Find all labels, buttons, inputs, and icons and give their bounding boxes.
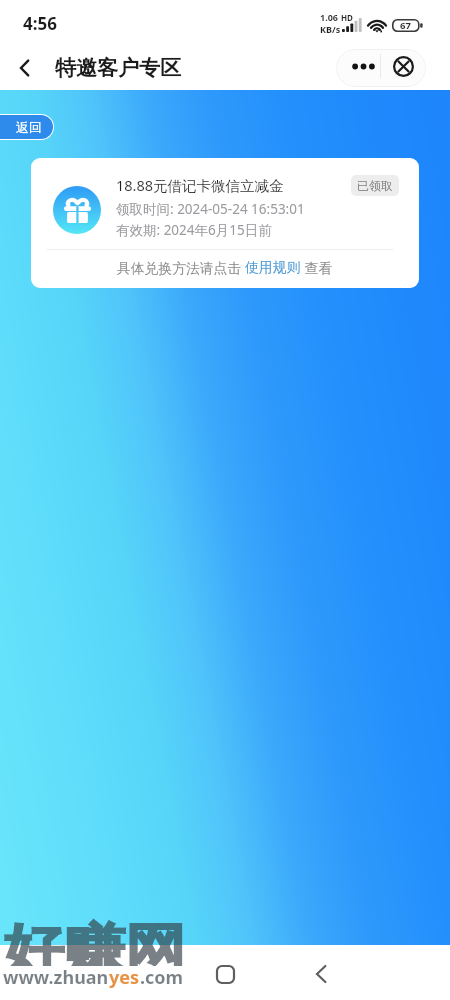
staticText: 具体兑换方法请点击 xyxy=(117,258,245,277)
staticText: 67 xyxy=(400,19,411,32)
button[interactable]: 18.88元借记卡微信立减金 xyxy=(31,158,419,288)
staticText: 特邀客户专区 xyxy=(55,55,181,81)
staticText: 使用规则 xyxy=(245,259,301,276)
staticText: HD xyxy=(341,12,353,23)
staticText: 4:56 xyxy=(23,12,57,35)
button[interactable]: Back xyxy=(299,952,343,996)
staticText: .com xyxy=(140,965,184,990)
button[interactable]: Close xyxy=(381,49,426,87)
staticText: 已领取 xyxy=(357,178,393,193)
button[interactable]: 返回 xyxy=(0,115,53,139)
button[interactable]: Back xyxy=(8,51,42,85)
button[interactable]: More options xyxy=(336,49,380,87)
staticText: yes xyxy=(109,965,140,990)
staticText: 18.88元借记卡微信立减金 xyxy=(116,175,284,195)
staticText: 1.06 xyxy=(320,11,338,23)
staticText: KB/s xyxy=(320,23,341,35)
button[interactable]: 已领取 xyxy=(351,175,399,196)
button[interactable]: Recent apps xyxy=(203,952,247,996)
staticText: 有效期: 2024年6月15日前 xyxy=(116,221,272,239)
staticText: 领取时间: 2024-05-24 16:53:01 xyxy=(116,200,305,218)
staticText: 返回 xyxy=(16,119,42,135)
staticText: 好赚网 xyxy=(3,916,185,966)
staticText: 查看 xyxy=(301,258,333,277)
button[interactable]: 使用规则 xyxy=(245,259,301,276)
staticText: www.zhuan xyxy=(3,965,109,990)
